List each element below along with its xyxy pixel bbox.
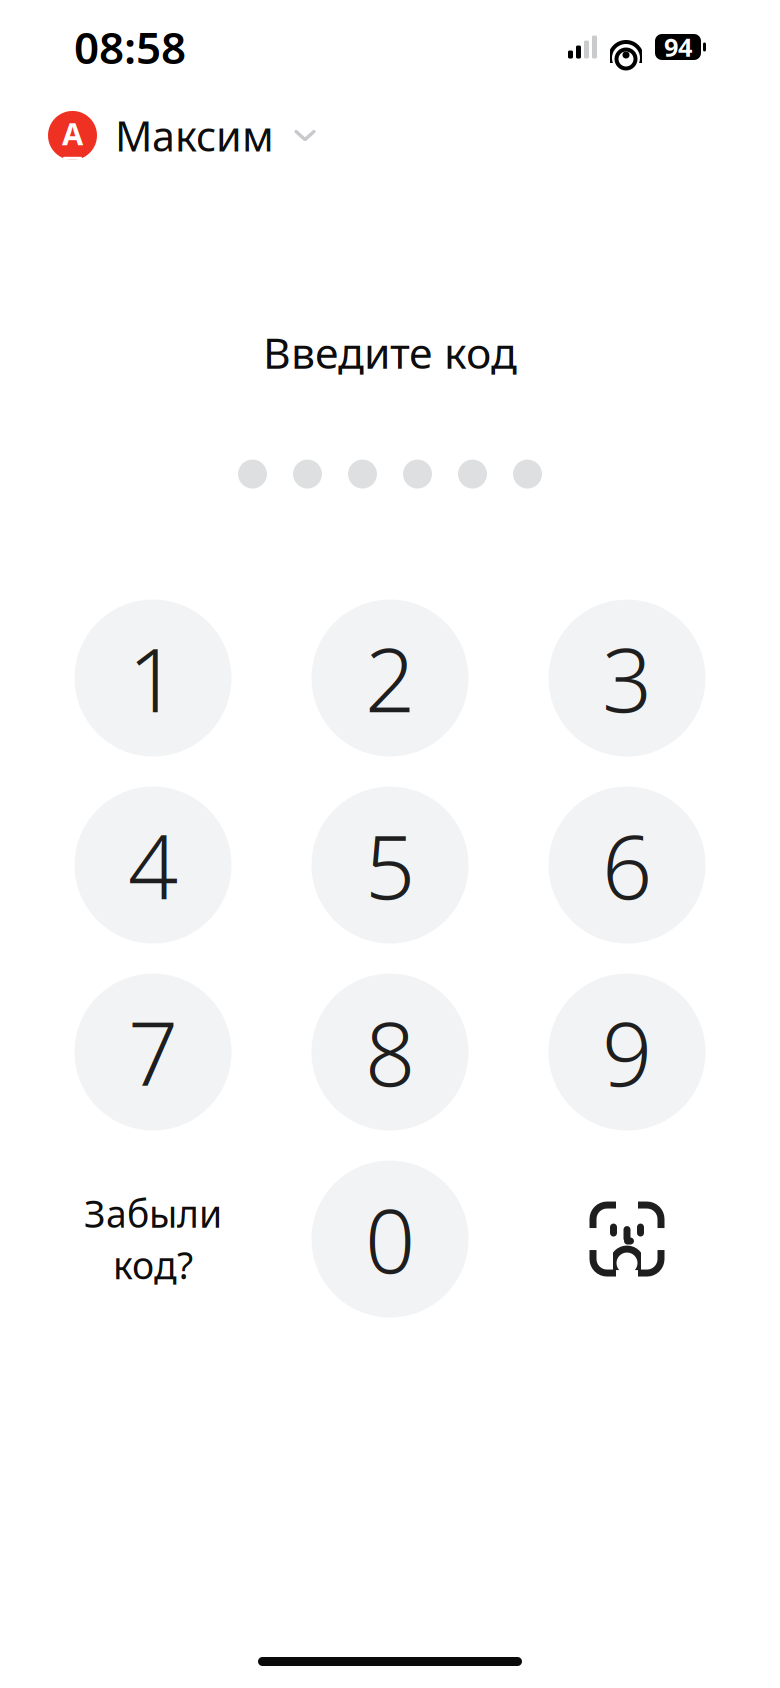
button[interactable]: 5 — [311, 786, 468, 943]
button[interactable]: 0 — [311, 1160, 468, 1317]
staticText: 3 — [602, 620, 652, 736]
button[interactable]: 3 — [548, 599, 705, 756]
button[interactable]: 9 — [548, 973, 705, 1130]
staticText: 7 — [128, 994, 178, 1110]
staticText: 08:58 — [74, 18, 186, 76]
button[interactable]: Забыли — [74, 1160, 231, 1317]
staticText: код? — [113, 1240, 193, 1290]
button[interactable]: 1 — [74, 599, 231, 756]
staticText: 94 — [664, 30, 692, 64]
staticText: 5 — [365, 807, 415, 923]
button[interactable]: Face ID — [548, 1160, 705, 1317]
staticText: 2 — [365, 620, 415, 736]
staticText: Максим — [115, 108, 274, 163]
button[interactable]: 6 — [548, 786, 705, 943]
button[interactable]: 7 — [74, 973, 231, 1130]
staticText: 4 — [128, 807, 178, 923]
staticText: Введите код — [263, 324, 517, 381]
button[interactable]: 2 — [311, 599, 468, 756]
staticText: A — [62, 113, 83, 154]
staticText: 8 — [365, 994, 415, 1110]
button[interactable]: A — [48, 102, 318, 169]
button[interactable]: 8 — [311, 973, 468, 1130]
staticText: Забыли — [84, 1188, 222, 1238]
staticText: 0 — [365, 1181, 415, 1297]
staticText: 1 — [128, 620, 178, 736]
staticText: 9 — [602, 994, 652, 1110]
button[interactable]: 4 — [74, 786, 231, 943]
staticText: 6 — [602, 807, 652, 923]
